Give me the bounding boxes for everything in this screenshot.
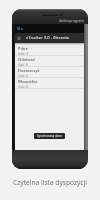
staticText: Pilne bbox=[18, 46, 28, 52]
button[interactable]: Odebrać bbox=[15, 56, 84, 67]
staticText: ilość: 6 bbox=[18, 63, 29, 66]
button[interactable]: Wszystkie bbox=[15, 78, 84, 89]
button[interactable]: Dostarczyć bbox=[15, 67, 84, 78]
staticText: ilość: 2 bbox=[18, 74, 29, 77]
staticText: ilość: 4 bbox=[18, 52, 29, 55]
staticText: Czytelna lista dyspozycji bbox=[13, 178, 87, 187]
staticText: Synchronizuj dane bbox=[37, 134, 62, 138]
staticText: Odebrać bbox=[18, 57, 36, 63]
button[interactable]: Synchronizuj dane bbox=[34, 133, 65, 139]
staticText: dobreprogramy.pl bbox=[59, 18, 85, 24]
button[interactable]: Menu bbox=[15, 33, 23, 43]
staticText: Dostarczyć bbox=[18, 68, 40, 74]
button[interactable]: Pilne bbox=[15, 45, 84, 56]
staticText: ilość: 8 bbox=[18, 85, 29, 88]
staticText: Wszystkie bbox=[18, 79, 38, 85]
staticText: eTrucker 3.0 - Zlecenia bbox=[26, 35, 69, 41]
